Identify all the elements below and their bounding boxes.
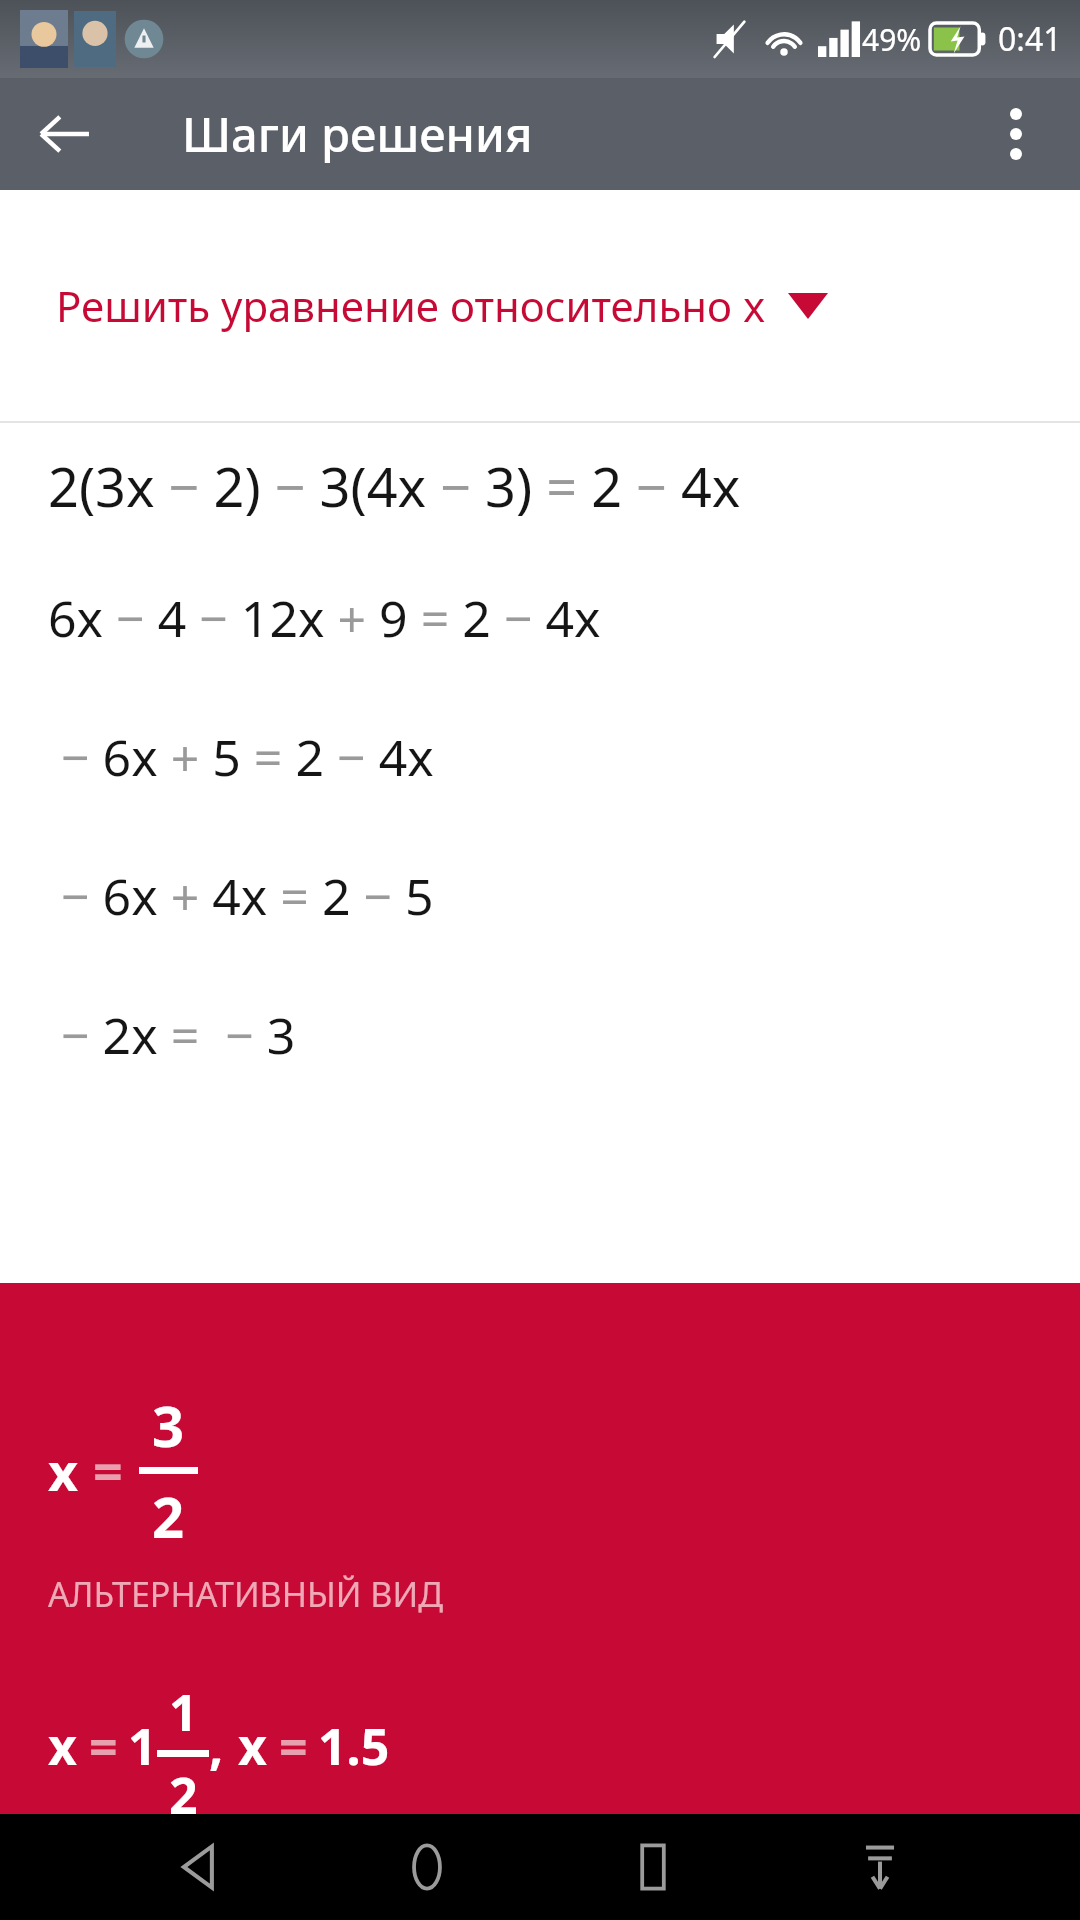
- button[interactable]: Back: [150, 1814, 250, 1920]
- staticText: Шаги решения: [182, 102, 533, 166]
- staticText: =: [279, 1712, 308, 1780]
- staticText: x: [48, 1435, 79, 1506]
- staticText: 2: [152, 1478, 185, 1554]
- staticText: 1: [169, 1678, 198, 1746]
- button[interactable]: − 6x + 5 = 2 − 4x: [0, 687, 1080, 826]
- button[interactable]: Back: [28, 98, 100, 170]
- button[interactable]: More options: [978, 96, 1054, 172]
- button[interactable]: Home: [377, 1814, 477, 1920]
- button[interactable]: 6x − 4 − 12x + 9 = 2 − 4x: [0, 548, 1080, 687]
- button[interactable]: Hide navigation bar: [830, 1814, 930, 1920]
- button[interactable]: − 6x + 4x = 2 − 5: [0, 826, 1080, 965]
- staticText: − 6x + 5 = 2 − 4x: [48, 723, 434, 791]
- button[interactable]: 2(3x − 2) − 3(4x − 3) = 2 − 4x: [0, 423, 1080, 548]
- staticText: − 6x + 4x = 2 − 5: [48, 862, 434, 930]
- staticText: 49%: [862, 19, 922, 60]
- staticText: x: [238, 1712, 267, 1780]
- button[interactable]: x: [0, 1283, 1080, 1814]
- staticText: x: [48, 1712, 77, 1780]
- button[interactable]: Решить уравнение относительно x: [0, 190, 1080, 421]
- staticText: ,: [209, 1712, 224, 1780]
- staticText: 1.5: [318, 1712, 390, 1780]
- staticText: 1: [128, 1712, 157, 1780]
- staticText: 2: [169, 1761, 198, 1814]
- staticText: АЛЬТЕРНАТИВНЫЙ ВИД: [48, 1571, 443, 1617]
- staticText: Решить уравнение относительно x: [56, 277, 766, 334]
- staticText: 3: [152, 1387, 185, 1463]
- staticText: =: [93, 1435, 123, 1506]
- staticText: 2(3x − 2) − 3(4x − 3) = 2 − 4x: [48, 449, 741, 523]
- button[interactable]: Recents: [603, 1814, 703, 1920]
- staticText: − 2x = − 3: [48, 1001, 296, 1069]
- staticText: 0:41: [998, 17, 1062, 61]
- staticText: 6x − 4 − 12x + 9 = 2 − 4x: [48, 584, 601, 652]
- staticText: =: [89, 1712, 118, 1780]
- button[interactable]: − 2x = − 3: [0, 965, 1080, 1104]
